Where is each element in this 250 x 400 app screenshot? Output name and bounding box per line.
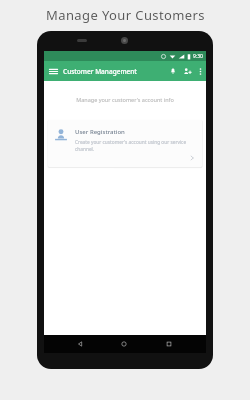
button[interactable]: Home [116,336,132,352]
staticText: Manage Your Customers [46,6,205,24]
staticText: User Registration [75,128,125,136]
button[interactable]: Open User Registration [188,154,196,162]
staticText: Customer Management [63,67,137,76]
button[interactable]: Open navigation drawer [44,61,63,81]
button[interactable]: Add customer [180,61,195,81]
button[interactable]: Notifications [166,61,180,81]
button[interactable]: Back [72,336,88,352]
button[interactable]: More options [195,61,206,81]
button[interactable]: Recent apps [161,336,177,352]
staticText: 9:30 [193,53,203,60]
button[interactable]: User Registration [48,120,202,167]
staticText: Create your customer's account using our… [75,139,187,153]
staticText: Manage your customer's account info [44,96,206,103]
